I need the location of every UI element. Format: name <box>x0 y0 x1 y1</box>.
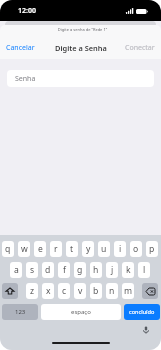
staticText: z <box>30 285 35 297</box>
button[interactable]: s <box>26 262 38 278</box>
staticText: concluído <box>129 308 155 316</box>
button[interactable]: f <box>58 262 70 278</box>
button[interactable]: c <box>58 283 70 299</box>
button[interactable]: e <box>34 241 46 257</box>
staticText: l <box>143 264 146 276</box>
staticText: f <box>63 264 66 276</box>
staticText: 12:00 <box>18 6 36 16</box>
staticText: k <box>126 264 131 276</box>
staticText: n <box>109 285 115 297</box>
button[interactable]: j <box>106 262 118 278</box>
button[interactable]: 123 <box>2 304 38 320</box>
button[interactable]: k <box>122 262 134 278</box>
button[interactable]: Cancelar <box>0 39 41 57</box>
staticText: espaço <box>71 308 91 316</box>
button[interactable]: concluído <box>124 304 160 320</box>
staticText: c <box>62 285 67 297</box>
staticText: p <box>149 243 155 255</box>
button[interactable]: Senha <box>7 70 154 87</box>
staticText: h <box>93 264 99 276</box>
button[interactable]: Backspace <box>142 283 158 299</box>
button[interactable]: o <box>130 241 142 257</box>
button[interactable]: h <box>90 262 102 278</box>
button[interactable]: q <box>2 241 14 257</box>
button[interactable]: d <box>42 262 54 278</box>
staticText: w <box>21 243 28 255</box>
button[interactable]: i <box>114 241 126 257</box>
button[interactable]: u <box>98 241 110 257</box>
staticText: q <box>5 243 11 255</box>
button[interactable]: espaço <box>41 304 121 320</box>
staticText: x <box>46 285 51 297</box>
staticText: y <box>86 243 91 255</box>
staticText: o <box>133 243 139 255</box>
button[interactable]: m <box>122 283 134 299</box>
button[interactable]: Shift <box>2 283 18 299</box>
staticText: Senha <box>15 74 36 84</box>
button[interactable]: Dictate <box>142 326 150 334</box>
staticText: s <box>30 264 35 276</box>
staticText: j <box>111 264 114 276</box>
button[interactable]: t <box>66 241 78 257</box>
staticText: g <box>77 264 83 276</box>
staticText: Conectar <box>125 43 155 53</box>
button[interactable]: r <box>50 241 62 257</box>
button[interactable]: z <box>26 283 38 299</box>
button[interactable]: x <box>42 283 54 299</box>
staticText: e <box>38 243 43 255</box>
button[interactable]: a <box>10 262 22 278</box>
staticText: t <box>70 243 74 255</box>
staticText: Digite a senha de “Rede 1” <box>2 27 161 32</box>
staticText: d <box>45 264 51 276</box>
button[interactable]: g <box>74 262 86 278</box>
button[interactable]: Conectar <box>119 39 161 57</box>
button[interactable]: v <box>74 283 86 299</box>
staticText: Cancelar <box>6 43 35 53</box>
button[interactable]: l <box>138 262 150 278</box>
button[interactable]: p <box>146 241 158 257</box>
button[interactable]: y <box>82 241 94 257</box>
staticText: r <box>54 243 58 255</box>
staticText: b <box>93 285 99 297</box>
staticText: m <box>124 285 133 297</box>
staticText: i <box>119 243 122 255</box>
staticText: v <box>78 285 83 297</box>
staticText: a <box>14 264 19 276</box>
button[interactable]: w <box>18 241 30 257</box>
staticText: u <box>101 243 107 255</box>
button[interactable]: n <box>106 283 118 299</box>
staticText: 123 <box>15 308 26 316</box>
staticText: Digite a Senha <box>55 43 107 53</box>
button[interactable]: b <box>90 283 102 299</box>
